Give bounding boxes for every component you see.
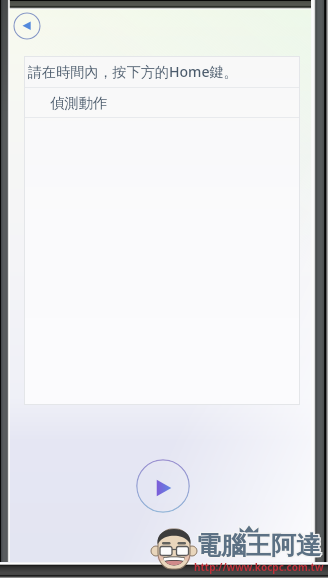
button[interactable]: Back	[13, 12, 41, 40]
staticText: 電腦王阿達	[195, 530, 320, 561]
staticText: 電腦王阿達	[195, 531, 320, 562]
staticText: 電腦王阿達	[197, 531, 322, 562]
staticText: 電腦王阿達	[196, 531, 321, 562]
staticText: 電腦王阿達	[195, 529, 320, 560]
staticText: 電腦王阿達	[196, 529, 321, 560]
staticText: 電腦王阿達	[197, 530, 322, 561]
staticText: 電腦王阿達	[196, 530, 321, 561]
staticText: 電腦王阿達	[197, 529, 322, 560]
staticText: http://www.kocpc.com.tw	[194, 560, 324, 574]
staticText: 請在時間內，按下方的Home鍵。	[28, 62, 238, 81]
button[interactable]: Play	[136, 459, 190, 513]
button[interactable]: 偵測動作	[24, 88, 300, 117]
staticText: 偵測動作	[50, 94, 108, 112]
